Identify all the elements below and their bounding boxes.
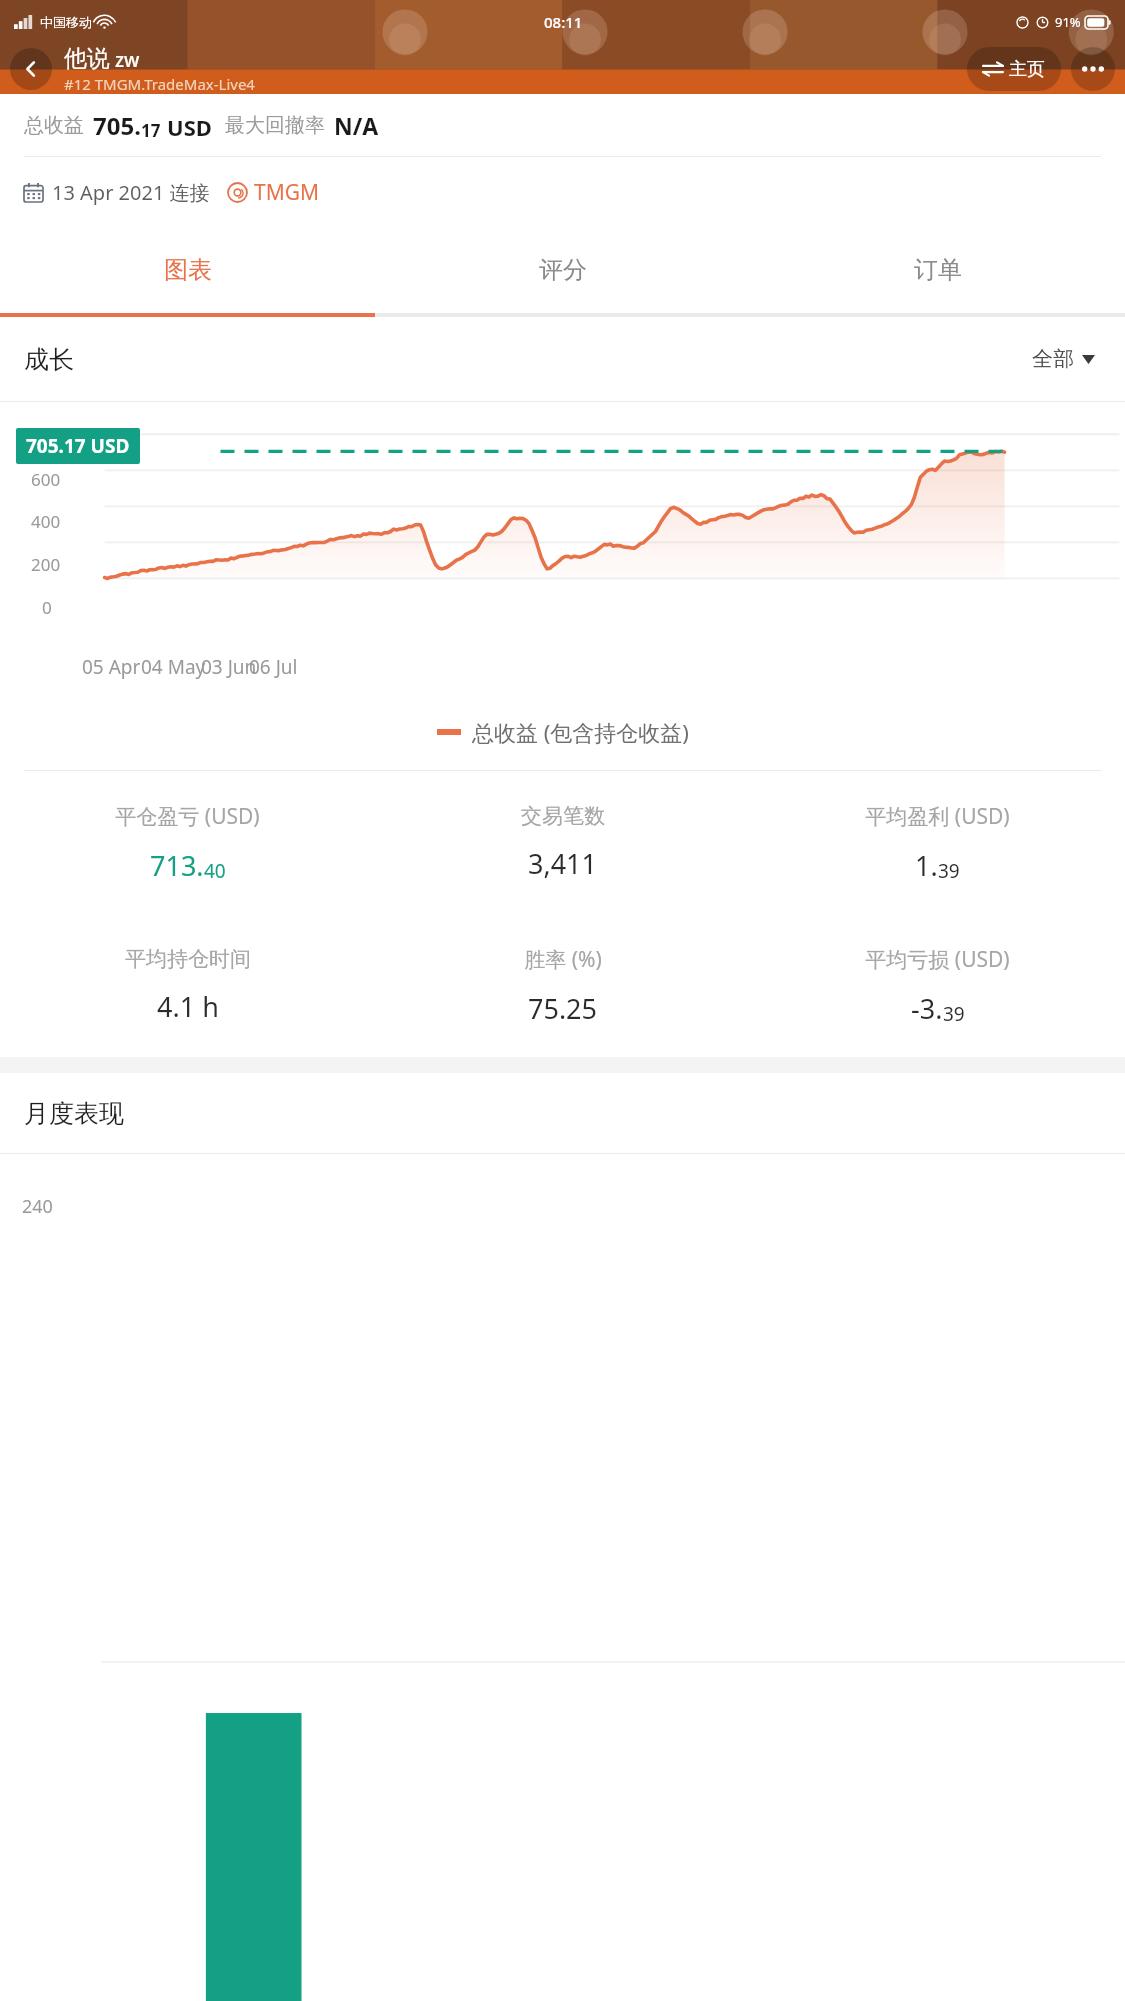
- staticText: 平均盈利 (USD): [865, 802, 1010, 831]
- staticText: 705.17 USD: [26, 433, 130, 459]
- staticText: 中国移动: [40, 14, 92, 30]
- staticText: #12 TMGM.TradeMax-Live4: [64, 74, 255, 94]
- staticText: 平均持仓时间: [125, 946, 251, 972]
- staticText: 600: [31, 468, 61, 491]
- button[interactable]: 平仓盈亏 (USD): [0, 771, 375, 914]
- staticText: 705.: [93, 109, 141, 142]
- staticText: 图表: [164, 255, 212, 285]
- staticText: 交易笔数: [521, 803, 605, 829]
- button[interactable]: 全部: [1026, 340, 1101, 378]
- staticText: 月度表现: [24, 1098, 124, 1129]
- staticText: 总收益: [24, 113, 84, 138]
- staticText: 3,411: [528, 845, 598, 882]
- staticText: 成长: [24, 344, 74, 375]
- button[interactable]: 平均盈利 (USD): [750, 771, 1125, 914]
- staticText: 91%: [1055, 13, 1081, 31]
- staticText: 05 Apr: [82, 654, 141, 680]
- staticText: 17: [141, 119, 161, 142]
- staticText: 08:11: [544, 12, 583, 32]
- staticText: 订单: [914, 255, 962, 285]
- staticText: 1.: [915, 847, 938, 884]
- staticText: 713.: [150, 847, 204, 884]
- staticText: 胜率 (%): [524, 945, 602, 974]
- button[interactable]: Back: [10, 48, 52, 90]
- staticText: zw: [115, 47, 140, 73]
- button[interactable]: 主页: [967, 47, 1061, 91]
- staticText: USD: [167, 112, 212, 142]
- staticText: 39: [943, 1001, 965, 1027]
- staticText: 0: [42, 596, 52, 619]
- button[interactable]: 订单: [750, 227, 1125, 313]
- button[interactable]: 胜率 (%): [375, 914, 750, 1057]
- button[interactable]: More options: [1071, 47, 1115, 91]
- button[interactable]: 交易笔数: [375, 771, 750, 914]
- staticText: 39: [938, 858, 960, 884]
- staticText: 240: [22, 1194, 53, 1219]
- staticText: 200: [31, 553, 61, 576]
- staticText: N/A: [334, 110, 379, 141]
- staticText: 4.1 h: [157, 988, 219, 1025]
- staticText: 03 Jun: [201, 654, 257, 680]
- staticText: 75.25: [528, 990, 598, 1027]
- staticText: TMGM: [254, 178, 320, 207]
- staticText: 800: [31, 423, 61, 446]
- staticText: 平均亏损 (USD): [865, 945, 1010, 974]
- button[interactable]: 平均持仓时间: [0, 914, 375, 1057]
- staticText: 他说: [64, 44, 110, 73]
- staticText: 总收益 (包含持仓收益): [472, 717, 689, 747]
- staticText: 最大回撤率: [225, 113, 325, 138]
- staticText: 400: [31, 510, 61, 533]
- staticText: 40: [204, 858, 226, 884]
- staticText: 04 May: [141, 654, 206, 680]
- staticText: 评分: [539, 255, 587, 285]
- button[interactable]: 平均亏损 (USD): [750, 914, 1125, 1057]
- staticText: 13 Apr 2021 连接: [52, 179, 210, 206]
- button[interactable]: 13 Apr 2021 连接: [24, 157, 1125, 227]
- button[interactable]: 图表: [0, 227, 375, 313]
- staticText: -3.: [911, 990, 943, 1027]
- staticText: 主页: [1009, 58, 1045, 81]
- button[interactable]: 评分: [375, 227, 750, 313]
- staticText: 全部: [1032, 346, 1074, 372]
- staticText: 平仓盈亏 (USD): [115, 802, 260, 831]
- staticText: 06 Jul: [249, 654, 298, 680]
